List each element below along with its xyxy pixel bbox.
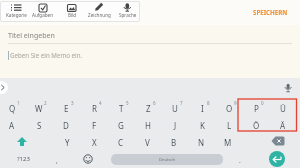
staticText: Aufgaben [32, 12, 54, 18]
button[interactable]: M [219, 134, 237, 150]
button[interactable] [269, 151, 285, 167]
button[interactable]: , [48, 152, 66, 168]
button[interactable]: Ö [247, 117, 265, 133]
staticText: ?123 [17, 155, 30, 163]
staticText: C [118, 137, 124, 148]
button[interactable]: ?123 [9, 151, 37, 167]
staticText: 1 [17, 100, 20, 106]
staticText: W [35, 103, 43, 114]
button[interactable]: A [3, 117, 21, 133]
button[interactable]: G [112, 117, 130, 133]
button[interactable]: N [192, 134, 210, 150]
staticText: 8 [207, 100, 210, 106]
staticText: Zeichnung [88, 12, 111, 18]
button[interactable] [0, 81, 8, 94]
button[interactable] [58, 1, 84, 22]
button[interactable]: Q [3, 100, 21, 116]
button[interactable]: Ä [274, 117, 292, 133]
button[interactable] [86, 1, 112, 22]
staticText: 4 [99, 100, 102, 106]
button[interactable]: D [57, 117, 75, 133]
staticText: Z [146, 103, 151, 114]
button[interactable]: E [57, 100, 75, 116]
staticText: U [172, 103, 178, 114]
staticText: 6 [153, 100, 156, 106]
button[interactable]: R [85, 100, 103, 116]
button[interactable]: X [85, 134, 103, 150]
staticText: Bild [68, 12, 77, 18]
staticText: J [174, 120, 177, 131]
button[interactable]: Z [139, 100, 157, 116]
button[interactable]: O [220, 100, 238, 116]
button[interactable]: F [85, 117, 103, 133]
staticText: P [254, 103, 259, 114]
staticText: D [63, 120, 69, 131]
button[interactable] [30, 1, 56, 22]
button[interactable]: I [193, 100, 211, 116]
staticText: H [145, 120, 151, 131]
button[interactable]: L [220, 117, 238, 133]
staticText: E [64, 103, 69, 114]
staticText: Ü [280, 103, 286, 114]
staticText: 2 [44, 100, 47, 106]
button[interactable]: T [112, 100, 130, 116]
staticText: R [92, 103, 97, 114]
staticText: Ö [253, 120, 260, 131]
staticText: I [201, 103, 204, 114]
button[interactable] [263, 133, 291, 149]
button[interactable] [3, 1, 29, 22]
staticText: Y [65, 137, 70, 148]
button[interactable]: U [166, 100, 184, 116]
button[interactable]: . [231, 152, 249, 168]
button[interactable]: Deutsch [111, 154, 223, 165]
button[interactable]: W [30, 100, 48, 116]
staticText: B [171, 137, 177, 148]
staticText: L [227, 120, 232, 131]
button[interactable]: Ü [274, 100, 292, 116]
staticText: K [200, 120, 205, 131]
staticText: 3 [71, 100, 74, 106]
button[interactable]: Y [58, 134, 76, 150]
staticText: N [198, 137, 205, 148]
staticText: SPEICHERN [253, 8, 288, 16]
button[interactable] [78, 151, 98, 167]
staticText: 7 [180, 100, 183, 106]
staticText: 0 [261, 100, 264, 106]
staticText: S [37, 120, 42, 131]
staticText: . [239, 156, 241, 165]
staticText: A [9, 120, 15, 131]
button[interactable]: H [139, 117, 157, 133]
button[interactable]: K [193, 117, 211, 133]
staticText: Ä [280, 120, 286, 131]
staticText: G [118, 120, 124, 131]
staticText: Kategorie [6, 12, 27, 18]
staticText: , [56, 156, 58, 165]
staticText: Q [9, 103, 16, 114]
button[interactable]: SPEICHERN [248, 4, 292, 20]
staticText: T [119, 103, 124, 114]
staticText: O [226, 103, 233, 114]
staticText: Deutsch [159, 157, 176, 163]
staticText: 5 [126, 100, 129, 106]
staticText: 9 [234, 100, 237, 106]
staticText: Sprache [119, 12, 137, 18]
staticText: M [224, 137, 232, 148]
staticText: Titel eingeben [8, 31, 55, 41]
staticText: F [92, 120, 97, 131]
button[interactable]: V [138, 134, 156, 150]
button[interactable]: C [112, 134, 130, 150]
button[interactable] [114, 1, 140, 22]
staticText: X [92, 137, 97, 148]
button[interactable]: B [165, 134, 183, 150]
button[interactable]: S [30, 117, 48, 133]
button[interactable]: P [247, 100, 265, 116]
button[interactable]: J [166, 117, 184, 133]
staticText: V [145, 137, 150, 148]
staticText: Geben Sie ein Memo ein. [10, 51, 83, 59]
button[interactable] [8, 133, 36, 149]
